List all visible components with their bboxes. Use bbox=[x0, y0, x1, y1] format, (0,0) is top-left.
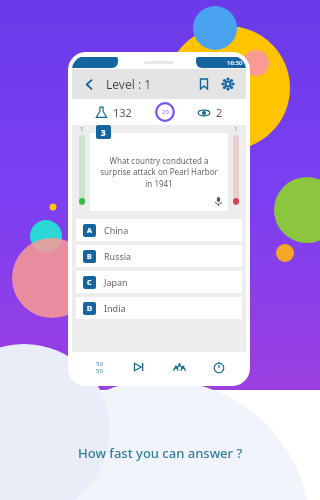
staticText: 16:50 bbox=[227, 59, 243, 67]
staticText: Level : 1 bbox=[106, 76, 152, 92]
staticText: B bbox=[87, 252, 92, 262]
button[interactable]: 2 bbox=[197, 105, 223, 120]
staticText: 20 bbox=[162, 108, 169, 116]
staticText: D bbox=[87, 304, 93, 314]
staticText: What country conducted a surprise attack… bbox=[100, 155, 218, 190]
button[interactable]: Voice bbox=[212, 195, 224, 207]
button[interactable]: B bbox=[76, 245, 242, 267]
staticText: 1 bbox=[80, 125, 84, 133]
staticText: C bbox=[87, 278, 92, 288]
button[interactable]: D bbox=[76, 297, 242, 319]
button[interactable]: Extra time bbox=[206, 354, 232, 380]
staticText: 3 bbox=[101, 127, 106, 138]
button[interactable]: 50-50 bbox=[86, 354, 112, 380]
button[interactable]: Timer bbox=[155, 102, 175, 122]
button[interactable]: 132 bbox=[95, 105, 132, 120]
button[interactable]: Audience poll bbox=[166, 354, 192, 380]
staticText: Russia bbox=[104, 250, 132, 262]
button[interactable]: C bbox=[76, 271, 242, 293]
staticText: How fast you can answer ? bbox=[78, 444, 243, 462]
staticText: Japan bbox=[104, 276, 128, 288]
staticText: China bbox=[104, 224, 129, 236]
staticText: 1 bbox=[234, 125, 238, 133]
button[interactable]: A bbox=[76, 219, 242, 241]
staticText: 2 bbox=[216, 105, 223, 120]
staticText: 132 bbox=[113, 105, 132, 120]
button[interactable]: Back bbox=[80, 75, 98, 93]
staticText: India bbox=[104, 302, 126, 314]
button[interactable]: Skip bbox=[126, 354, 152, 380]
button[interactable]: Bookmark bbox=[194, 74, 214, 94]
staticText: 50 50 bbox=[96, 360, 103, 374]
staticText: A bbox=[87, 226, 92, 236]
button[interactable]: Settings bbox=[218, 74, 238, 94]
